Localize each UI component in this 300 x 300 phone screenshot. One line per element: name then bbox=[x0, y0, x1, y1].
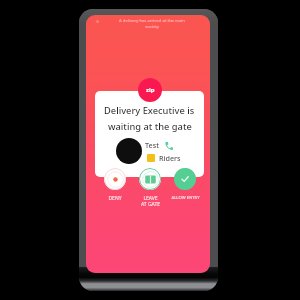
other: Allow entry bbox=[174, 168, 196, 190]
staticText: Test bbox=[145, 140, 159, 150]
staticText: Delivery Executive is bbox=[104, 104, 195, 117]
staticText: waiting at the gate bbox=[108, 120, 192, 133]
staticText: A delivery has arrived at the main bbox=[119, 18, 185, 24]
other: Leave at gate bbox=[139, 168, 161, 190]
staticText: LEAVE AT GATE bbox=[141, 195, 160, 208]
button[interactable]: Leave at gate bbox=[132, 168, 168, 208]
button[interactable]: Deny entry bbox=[97, 168, 133, 202]
button[interactable]: Allow entry bbox=[167, 168, 203, 201]
staticText: DENY bbox=[108, 195, 122, 202]
staticText: zip bbox=[146, 86, 155, 94]
staticText: ALLOW ENTRY bbox=[171, 195, 200, 201]
other: Deny entry bbox=[104, 168, 126, 190]
staticText: Riders bbox=[159, 153, 181, 163]
staticText: society bbox=[145, 24, 159, 30]
